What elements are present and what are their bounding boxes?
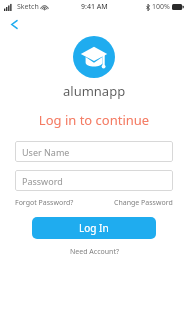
button[interactable]: Forgot Password?	[15, 198, 74, 208]
staticText: Password	[22, 175, 63, 187]
button[interactable]: Password	[15, 170, 173, 191]
staticText: 9:41 AM	[81, 2, 108, 12]
button[interactable]: User Name	[15, 141, 173, 162]
staticText: Log In	[79, 221, 109, 235]
staticText: 100%	[152, 2, 170, 12]
staticText: alumnapp	[63, 82, 126, 100]
staticText: Log in to continue	[0, 111, 188, 129]
button[interactable]: Change Password	[114, 198, 173, 208]
button[interactable]: Log In	[32, 217, 156, 239]
staticText: Forgot Password?	[15, 198, 74, 208]
staticText: Need Account?	[70, 247, 119, 257]
button[interactable]: Need Account?	[0, 247, 188, 257]
staticText: Sketch	[17, 2, 39, 12]
button[interactable]: Back	[6, 16, 22, 32]
staticText: User Name	[22, 146, 70, 158]
staticText: Change Password	[114, 198, 173, 208]
